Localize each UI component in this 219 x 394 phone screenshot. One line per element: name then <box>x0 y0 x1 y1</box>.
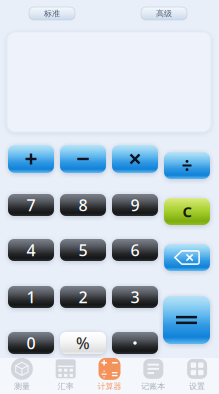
staticText: 汇率 <box>58 381 74 391</box>
staticText: 8 <box>78 194 87 216</box>
button[interactable]: Clear <box>164 198 210 225</box>
staticText: 2 <box>78 286 87 308</box>
button[interactable]: Percent <box>60 332 106 354</box>
staticText: 6 <box>130 239 139 261</box>
staticText: % <box>76 332 90 354</box>
button[interactable]: 汇率 <box>44 358 88 394</box>
button[interactable]: 5 <box>60 239 106 261</box>
staticText: 1 <box>26 286 35 308</box>
button[interactable]: 4 <box>8 239 54 261</box>
staticText: 0 <box>26 332 35 354</box>
button[interactable]: Delete <box>164 244 210 271</box>
staticText: 4 <box>26 239 35 261</box>
button[interactable]: 高级 <box>141 7 187 20</box>
button[interactable]: Equals <box>163 296 210 344</box>
staticText: 9 <box>130 194 139 216</box>
button[interactable]: Decimal point <box>112 332 158 354</box>
staticText: 设置 <box>189 381 205 391</box>
staticText: 高级 <box>156 9 172 18</box>
staticText: 测量 <box>14 381 30 391</box>
staticText: 标准 <box>44 9 60 18</box>
button[interactable]: 标准 <box>29 7 75 20</box>
button[interactable]: 设置 <box>175 358 219 394</box>
button[interactable]: Add <box>8 145 54 173</box>
button[interactable]: 3 <box>112 286 158 308</box>
button[interactable]: 0 <box>8 332 54 354</box>
button[interactable]: Divide <box>164 152 210 179</box>
button[interactable]: 1 <box>8 286 54 308</box>
button[interactable]: 计算器 <box>88 358 131 394</box>
button[interactable]: Multiply <box>112 145 158 173</box>
staticText: 7 <box>26 194 35 216</box>
button[interactable]: 7 <box>8 194 54 216</box>
button[interactable]: 记账本 <box>131 358 175 394</box>
staticText: 计算器 <box>97 381 121 391</box>
button[interactable]: Subtract <box>60 145 106 173</box>
button[interactable]: 9 <box>112 194 158 216</box>
button[interactable]: 2 <box>60 286 106 308</box>
button[interactable]: 8 <box>60 194 106 216</box>
staticText: 5 <box>78 239 87 261</box>
button[interactable]: 测量 <box>0 358 44 394</box>
button[interactable]: 6 <box>112 239 158 261</box>
staticText: C <box>182 202 191 221</box>
staticText: 3 <box>130 286 139 308</box>
staticText: 记账本 <box>141 381 165 391</box>
